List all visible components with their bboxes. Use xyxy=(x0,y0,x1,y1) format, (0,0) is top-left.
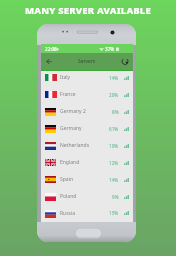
button[interactable]: England xyxy=(41,154,133,171)
staticText: 10% xyxy=(109,143,119,149)
staticText: 37% xyxy=(105,46,115,52)
button[interactable]: Back xyxy=(42,54,55,69)
staticText: 9% xyxy=(112,194,119,200)
staticText: Russia xyxy=(60,210,76,217)
staticText: 8% xyxy=(112,109,119,115)
staticText: Germany 2 xyxy=(60,108,86,115)
staticText: France xyxy=(60,91,76,98)
button[interactable]: Germany xyxy=(41,120,133,137)
staticText: 12% xyxy=(109,160,119,166)
button[interactable]: Netherlands xyxy=(41,137,133,154)
staticText: 61% xyxy=(109,126,119,132)
staticText: 15% xyxy=(109,210,119,216)
button[interactable]: France xyxy=(41,86,133,103)
staticText: Netherlands xyxy=(60,142,90,149)
button[interactable]: Russia xyxy=(41,205,133,221)
staticText: Germany xyxy=(60,125,82,132)
staticText: 20% xyxy=(109,92,119,98)
staticText: MANY SERVER AVAILABLE xyxy=(0,4,176,17)
staticText: 14% xyxy=(109,75,119,81)
staticText: Poland xyxy=(60,193,77,200)
staticText: 14% xyxy=(109,177,119,183)
staticText: England xyxy=(60,159,80,166)
staticText: Servers xyxy=(78,58,96,65)
button[interactable]: Poland xyxy=(41,188,133,205)
staticText: Spain xyxy=(60,176,74,183)
staticText: Italy xyxy=(60,74,71,81)
button[interactable]: Spain xyxy=(41,171,133,188)
button[interactable]: Refresh xyxy=(119,54,131,69)
staticText: 22:08 xyxy=(45,46,57,52)
button[interactable]: Germany 2 xyxy=(41,103,133,120)
button[interactable]: Italy xyxy=(41,69,133,86)
